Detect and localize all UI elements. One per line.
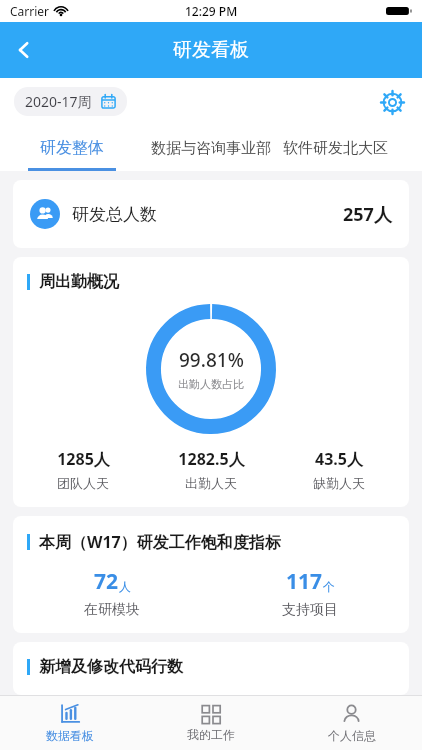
staticText: 人 xyxy=(119,579,131,594)
button[interactable]: 研发总人数 xyxy=(13,180,409,248)
button[interactable]: 周出勤概况 xyxy=(13,257,409,507)
staticText: 43.5人 xyxy=(315,448,363,470)
staticText: 个人信息 xyxy=(328,728,376,743)
staticText: 117 xyxy=(286,567,323,596)
staticText: 个 xyxy=(323,579,335,594)
staticText: 出勤人数占比 xyxy=(178,377,244,391)
button[interactable]: 2020-17周 xyxy=(14,87,127,116)
staticText: 出勤人天 xyxy=(185,475,237,491)
staticText: 1282.5人 xyxy=(178,448,245,470)
staticText: 研发看板 xyxy=(173,38,249,62)
button[interactable]: 数据与咨询事业部 xyxy=(143,125,279,171)
staticText: Carrier xyxy=(10,3,50,19)
staticText: 1285人 xyxy=(57,448,110,470)
staticText: 12:29 PM xyxy=(185,3,238,19)
staticText: 72 xyxy=(94,567,119,596)
staticText: 数据与咨询事业部 xyxy=(151,139,271,158)
staticText: 研发总人数 xyxy=(72,204,157,225)
staticText: 缺勤人天 xyxy=(313,475,365,491)
staticText: 支持项目 xyxy=(282,601,338,619)
button[interactable]: 数据看板 xyxy=(0,696,140,750)
staticText: 257人 xyxy=(343,202,392,227)
button[interactable]: 本周（W17）研发工作饱和度指标 xyxy=(13,516,409,633)
button[interactable]: 个人信息 xyxy=(281,696,422,750)
staticText: 99.81% xyxy=(179,347,244,373)
staticText: 数据看板 xyxy=(46,728,94,743)
staticText: 团队人天 xyxy=(57,475,109,491)
staticText: 本周（W17）研发工作饱和度指标 xyxy=(39,531,281,553)
staticText: 研发整体 xyxy=(40,138,104,158)
button[interactable]: 我的工作 xyxy=(140,696,281,750)
staticText: 2020-17周 xyxy=(25,92,92,111)
button[interactable]: 研发整体 xyxy=(0,125,143,171)
staticText: 软件研发北大区 xyxy=(283,139,388,158)
button[interactable]: Back xyxy=(0,26,48,74)
button[interactable]: 软件研发北大区 xyxy=(279,125,388,171)
staticText: 在研模块 xyxy=(84,601,140,619)
button[interactable]: 新增及修改代码行数 xyxy=(13,642,409,695)
staticText: 新增及修改代码行数 xyxy=(39,657,183,677)
staticText: 周出勤概况 xyxy=(39,272,119,292)
button[interactable]: Settings xyxy=(372,82,412,122)
staticText: 我的工作 xyxy=(187,727,235,742)
